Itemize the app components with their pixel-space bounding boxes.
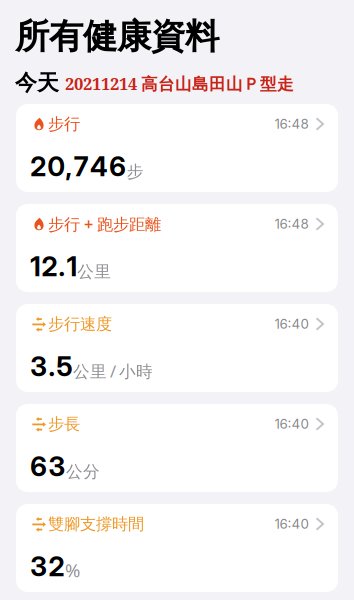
staticText: . (59, 250, 66, 283)
staticText: 公里 / 小時 (73, 360, 153, 382)
staticText: 4 (90, 150, 108, 183)
staticText: 3 (30, 350, 47, 383)
button[interactable]: 步長 (16, 404, 338, 492)
staticText: 7 (74, 150, 89, 183)
staticText: 1 (67, 250, 77, 283)
staticText: 今天 (15, 69, 59, 96)
staticText: 5 (57, 350, 73, 383)
staticText: 16:40 (274, 416, 308, 432)
button[interactable]: 雙腳支撐時間 (16, 504, 338, 592)
staticText: 公分 (66, 461, 100, 482)
staticText: 雙腳支撐時間 (48, 514, 144, 534)
staticText: 0 (47, 150, 64, 183)
staticText: 6 (109, 150, 126, 183)
button[interactable]: 步行 + 跑步距離 (16, 204, 338, 292)
staticText: . (48, 350, 55, 383)
staticText: 2 (41, 250, 57, 283)
staticText: 16:40 (274, 316, 308, 332)
button[interactable]: 步行 (16, 104, 338, 192)
staticText: 2 (48, 550, 64, 583)
staticText: 20211214 高台山島田山Ｐ型走 (65, 72, 294, 95)
staticText: 16:40 (274, 516, 308, 532)
staticText: 步長 (48, 414, 80, 434)
staticText: 3 (30, 550, 47, 583)
staticText: 3 (48, 450, 65, 483)
staticText: , (66, 150, 73, 183)
staticText: 16:48 (274, 216, 308, 232)
staticText: % (65, 557, 80, 583)
staticText: 步行速度 (48, 314, 112, 334)
staticText: 步行 (48, 114, 80, 134)
staticText: 步行 + 跑步距離 (48, 213, 161, 235)
staticText: 公里 (77, 261, 111, 282)
button[interactable]: 今天 (15, 69, 59, 96)
button[interactable]: 步行速度 (16, 304, 338, 392)
staticText: 步 (127, 161, 144, 182)
staticText: 16:48 (274, 116, 308, 132)
staticText: 所有健康資料 (15, 15, 219, 58)
staticText: 1 (30, 250, 40, 283)
staticText: 6 (30, 450, 47, 483)
staticText: 2 (30, 150, 46, 183)
